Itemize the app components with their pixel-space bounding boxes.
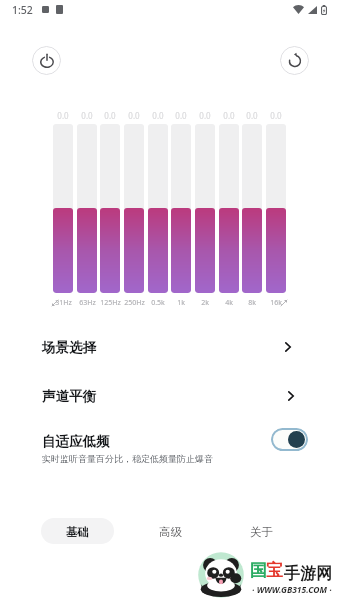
- button[interactable]: Power: [32, 46, 61, 75]
- staticText: 4k: [225, 298, 233, 308]
- button[interactable]: [171, 124, 191, 293]
- staticText: 0.0: [199, 110, 211, 121]
- staticText: 0.0: [270, 110, 282, 121]
- staticText: 高级: [159, 525, 182, 539]
- staticText: 实时监听音量百分比，稳定低频量防止爆音: [42, 453, 213, 464]
- staticText: · WWW.GB315.COM ·: [252, 584, 332, 596]
- button[interactable]: [124, 124, 144, 293]
- staticText: 31Hz: [55, 298, 72, 308]
- staticText: 0.0: [223, 110, 235, 121]
- staticText: 63Hz: [79, 298, 96, 308]
- staticText: 宝: [266, 560, 283, 581]
- button[interactable]: 高级: [140, 519, 200, 545]
- staticText: 基础: [66, 525, 89, 539]
- button[interactable]: [219, 124, 239, 293]
- button[interactable]: [242, 124, 262, 293]
- staticText: 0.0: [152, 110, 164, 121]
- staticText: 场景选择: [42, 339, 96, 356]
- staticText: 0.0: [128, 110, 140, 121]
- button[interactable]: [100, 124, 120, 293]
- staticText: 8k: [248, 298, 256, 308]
- staticText: 0.0: [246, 110, 258, 121]
- button[interactable]: 场景选择: [0, 336, 338, 358]
- button[interactable]: [195, 124, 215, 293]
- staticText: 自适应低频: [42, 433, 110, 450]
- staticText: 0.5k: [151, 298, 165, 308]
- button[interactable]: [148, 124, 168, 293]
- staticText: 250Hz: [124, 298, 145, 308]
- staticText: 国: [250, 560, 267, 581]
- staticText: 0.0: [175, 110, 187, 121]
- button[interactable]: 声道平衡: [0, 385, 338, 407]
- staticText: 0.0: [57, 110, 69, 121]
- staticText: 0.0: [104, 110, 116, 121]
- staticText: 0.0: [81, 110, 93, 121]
- staticText: 2k: [201, 298, 209, 308]
- staticText: 关于: [250, 525, 273, 539]
- staticText: 声道平衡: [42, 388, 96, 405]
- button[interactable]: Reset: [280, 46, 309, 75]
- button[interactable]: 关于: [231, 519, 291, 545]
- button[interactable]: 基础: [41, 518, 114, 544]
- button[interactable]: 自适应低频: [0, 425, 338, 469]
- button[interactable]: [266, 124, 286, 293]
- staticText: 16k: [270, 298, 282, 308]
- staticText: 125Hz: [100, 298, 121, 308]
- staticText: 1:52: [12, 3, 33, 17]
- staticText: 1k: [177, 298, 185, 308]
- button[interactable]: [53, 124, 73, 293]
- button[interactable]: Adaptive bass toggle: [271, 428, 308, 451]
- button[interactable]: [77, 124, 97, 293]
- staticText: 手游网: [284, 564, 332, 584]
